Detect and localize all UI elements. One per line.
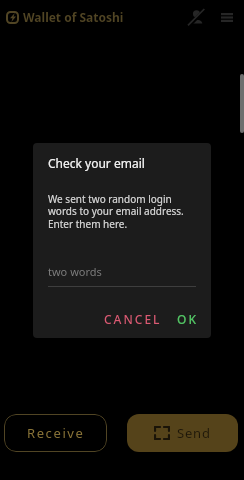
staticText: CANCEL xyxy=(104,311,162,327)
staticText: Send xyxy=(177,424,211,442)
staticText: Wallet of Satoshi xyxy=(23,9,124,25)
staticText: two words xyxy=(48,264,102,279)
staticText: Check your email xyxy=(48,155,145,171)
button[interactable]: CANCEL xyxy=(98,306,168,332)
staticText: Receive xyxy=(27,424,85,442)
button[interactable]: Hide balance xyxy=(183,4,209,30)
button[interactable]: Menu xyxy=(214,4,240,30)
staticText: We sent two random login words to your e… xyxy=(48,192,198,231)
button[interactable]: Receive xyxy=(4,414,107,452)
staticText: OK xyxy=(177,311,198,327)
button[interactable]: Send xyxy=(127,414,238,452)
button[interactable]: OK xyxy=(171,306,204,332)
